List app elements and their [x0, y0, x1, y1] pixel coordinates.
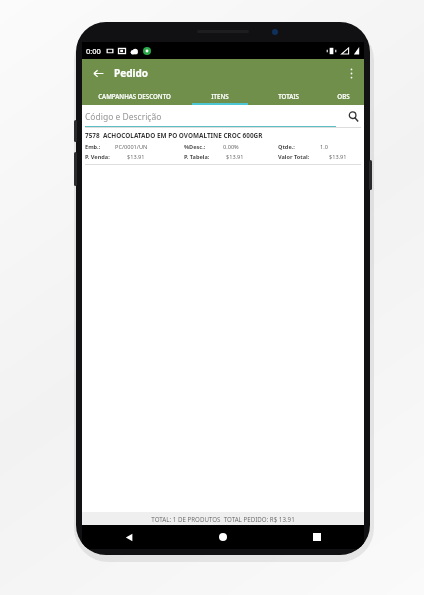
staticText: ITENS: [211, 92, 229, 100]
staticText: TOTAL: 1 DE PRODUTOS TOTAL PEDIDO: R$ 13…: [151, 515, 295, 523]
button[interactable]: Recent apps: [270, 525, 364, 549]
staticText: Valor Total:: [278, 153, 310, 161]
staticText: OBS: [337, 92, 350, 100]
staticText: P. Venda:: [85, 153, 110, 161]
staticText: PC/0001/UN: [115, 143, 148, 151]
staticText: Pedido: [114, 66, 149, 80]
staticText: Código e Descrição: [85, 111, 162, 123]
staticText: Qtde.:: [278, 143, 295, 151]
staticText: $13.91: [226, 153, 244, 161]
staticText: 0:00: [86, 46, 101, 56]
button[interactable]: Search: [342, 105, 364, 127]
button[interactable]: 7578 ACHOCOLATADO EM PO OVOMALTINE CROC …: [82, 127, 364, 165]
button[interactable]: Back: [82, 525, 176, 549]
button[interactable]: Home: [176, 525, 270, 549]
staticText: 7578 ACHOCOLATADO EM PO OVOMALTINE CROC …: [85, 131, 263, 140]
button[interactable]: OBS: [322, 86, 364, 105]
button[interactable]: TOTAIS: [254, 86, 322, 105]
staticText: P. Tabela:: [184, 153, 210, 161]
staticText: %Desc.:: [184, 143, 206, 151]
staticText: Emb.:: [85, 143, 101, 151]
staticText: 1.0: [320, 143, 328, 151]
button[interactable]: CAMPANHAS DESCONTO: [82, 86, 186, 105]
staticText: $13.91: [329, 153, 347, 161]
staticText: TOTAIS: [278, 92, 299, 100]
button[interactable]: Código e Descrição: [85, 105, 336, 127]
button[interactable]: More options: [342, 64, 360, 82]
staticText: 0.00%: [223, 143, 239, 151]
button[interactable]: ITENS: [186, 86, 254, 105]
staticText: $13.91: [127, 153, 145, 161]
staticText: CAMPANHAS DESCONTO: [98, 92, 171, 100]
button[interactable]: Back: [88, 63, 108, 83]
